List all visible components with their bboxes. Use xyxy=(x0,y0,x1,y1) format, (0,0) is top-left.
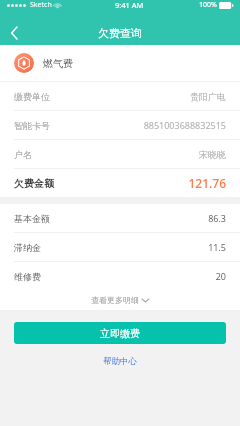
button[interactable]: 帮助中心 xyxy=(95,354,145,369)
staticText: 20 xyxy=(215,270,226,282)
button[interactable]: Back xyxy=(0,20,28,45)
staticText: 户名 xyxy=(14,149,32,160)
staticText: 维修费 xyxy=(14,271,41,282)
staticText: 86.3 xyxy=(208,212,226,224)
staticText: Sketch xyxy=(30,0,52,10)
staticText: 智能卡号 xyxy=(14,120,50,131)
staticText: 基本金额 xyxy=(14,213,50,224)
staticText: 宋晓晓 xyxy=(199,149,226,160)
button[interactable]: 缴费单位 xyxy=(0,82,240,111)
staticText: 100% xyxy=(199,0,217,10)
button[interactable]: 立即缴费 xyxy=(14,322,226,344)
staticText: 11.5 xyxy=(208,241,226,253)
staticText: 8851003688832515 xyxy=(143,119,226,131)
staticText: 查看更多明细 xyxy=(91,295,139,305)
staticText: 121.76 xyxy=(188,175,226,191)
staticText: 欠费查询 xyxy=(98,26,142,40)
staticText: 帮助中心 xyxy=(103,356,137,367)
button[interactable]: 基本金额 xyxy=(0,204,240,233)
staticText: 立即缴费 xyxy=(100,327,140,340)
staticText: 贵阳广电 xyxy=(190,91,226,102)
staticText: 欠费金额 xyxy=(14,177,54,190)
button[interactable]: 欠费金额 xyxy=(0,169,240,197)
button[interactable]: 滞纳金 xyxy=(0,233,240,262)
staticText: 燃气费 xyxy=(43,57,73,70)
staticText: 滞纳金 xyxy=(14,242,41,253)
button[interactable]: 智能卡号 xyxy=(0,111,240,140)
staticText: 9:41 AM xyxy=(115,0,144,10)
button[interactable]: 维修费 xyxy=(0,262,240,290)
staticText: 缴费单位 xyxy=(14,91,50,102)
button[interactable]: 查看更多明细 xyxy=(0,290,240,310)
button[interactable]: 燃气费 xyxy=(14,45,226,81)
button[interactable]: 户名 xyxy=(0,140,240,169)
